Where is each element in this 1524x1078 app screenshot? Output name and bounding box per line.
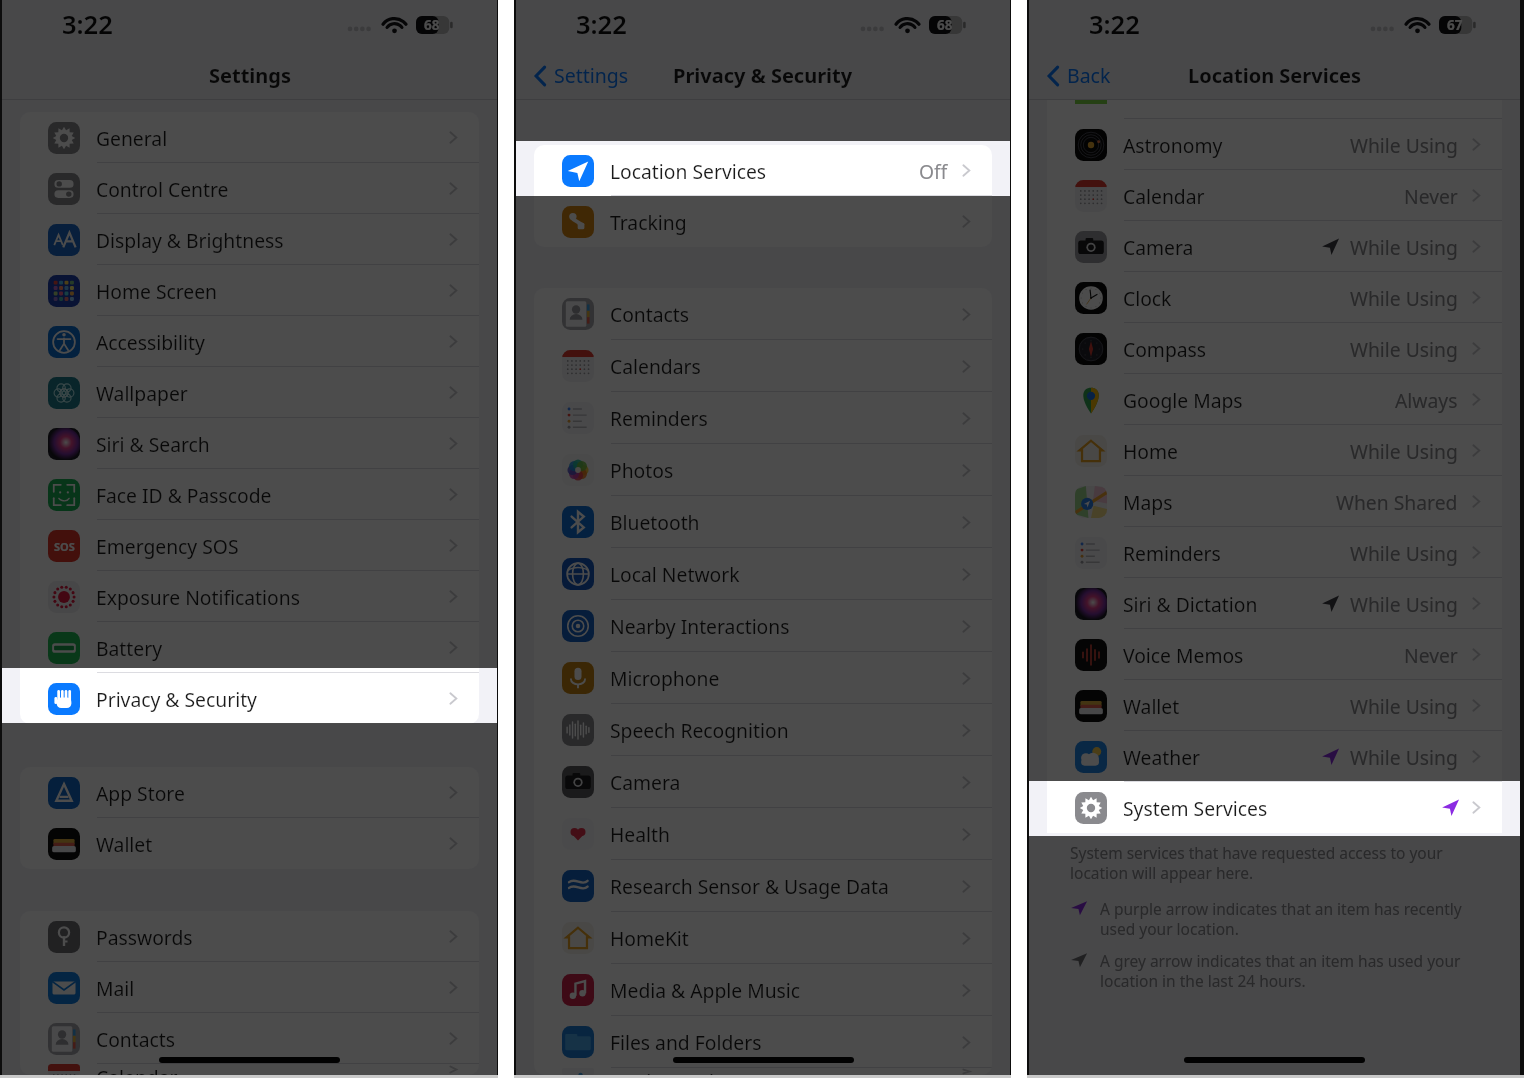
staticText: A purple arrow indicates that an item ha… [1100, 898, 1498, 939]
button[interactable]: Calendars [534, 340, 992, 392]
staticText: Off [919, 158, 948, 184]
staticText: System services that have requested acce… [1070, 842, 1498, 883]
button[interactable]: Siri & Dictation [1047, 578, 1502, 629]
button[interactable]: General [20, 112, 479, 163]
button[interactable]: Camera [1047, 221, 1502, 272]
staticText: Reminders [610, 405, 708, 431]
button[interactable]: Local Network [534, 548, 992, 600]
button[interactable]: Microphone [534, 652, 992, 704]
button[interactable]: Tracking [534, 196, 992, 247]
button[interactable]: Media & Apple Music [534, 964, 992, 1016]
staticText: Passwords [96, 924, 193, 950]
staticText: 3:22 [62, 7, 113, 42]
staticText: Home [1123, 438, 1178, 464]
staticText: Wallpaper [96, 380, 188, 406]
staticText: Google Maps [1123, 387, 1243, 413]
button[interactable]: Photos [534, 444, 992, 496]
button[interactable]: Motion & Fitness [534, 1068, 992, 1075]
button[interactable]: App Store [20, 767, 479, 818]
button[interactable]: Battery [20, 622, 479, 673]
staticText: Location Services [1188, 62, 1361, 89]
button[interactable]: Calendar [20, 1064, 479, 1075]
button[interactable]: Compass [1047, 323, 1502, 374]
button[interactable]: Exposure Notifications [20, 571, 479, 622]
staticText: Reminders [1123, 540, 1221, 566]
staticText: 68 [937, 16, 953, 34]
button[interactable]: Camera [534, 756, 992, 808]
staticText: HomeKit [610, 925, 689, 951]
staticText: Local Network [610, 561, 740, 587]
staticText: General [96, 125, 168, 151]
staticText: Compass [1123, 336, 1207, 362]
staticText: 67 [1447, 16, 1463, 34]
staticText: A grey arrow indicates that an item has … [1100, 950, 1498, 991]
staticText: Display & Brightness [96, 227, 284, 253]
staticText: Contacts [610, 301, 690, 327]
button[interactable]: Control Centre [20, 163, 479, 214]
staticText: Health [610, 821, 670, 847]
staticText: When Shared [1336, 489, 1458, 515]
button[interactable]: Contacts [20, 1013, 479, 1064]
button[interactable]: Voice Memos [1047, 629, 1502, 680]
staticText: Microphone [610, 665, 720, 691]
staticText: Speech Recognition [610, 717, 789, 743]
staticText: App Store [96, 780, 185, 806]
button[interactable]: Back to Settings [516, 56, 639, 95]
button[interactable]: System Services [1047, 782, 1502, 833]
staticText: Astronomy [1123, 132, 1223, 158]
button[interactable]: Accessibility [20, 316, 479, 367]
button[interactable]: Reminders [534, 392, 992, 444]
button[interactable]: Google Maps [1047, 374, 1502, 425]
button[interactable]: Calendar [1047, 170, 1502, 221]
button[interactable]: Home Screen [20, 265, 479, 316]
staticText: Never [1404, 642, 1458, 668]
button[interactable]: Research Sensor & Usage Data [534, 860, 992, 912]
button[interactable]: Wallet [1047, 680, 1502, 731]
button[interactable]: Back [1029, 56, 1121, 95]
button[interactable]: Clock [1047, 272, 1502, 323]
button[interactable]: Speech Recognition [534, 704, 992, 756]
button[interactable]: Display & Brightness [20, 214, 479, 265]
button[interactable]: Passwords [20, 911, 479, 962]
staticText: Privacy & Security [96, 686, 257, 712]
button[interactable]: Location Services [534, 145, 992, 196]
staticText: Nearby Interactions [610, 613, 790, 639]
staticText: Settings [209, 62, 291, 89]
staticText: Files and Folders [610, 1029, 762, 1055]
button[interactable]: Contacts [534, 288, 992, 340]
staticText: Wallet [1123, 693, 1180, 719]
button[interactable]: Reminders [1047, 527, 1502, 578]
staticText: Back [1067, 62, 1111, 89]
staticText: Siri & Dictation [1123, 591, 1258, 617]
button[interactable]: Wallet [20, 818, 479, 869]
button[interactable]: Health [534, 808, 992, 860]
button[interactable]: Privacy & Security [20, 673, 479, 724]
staticText: While Using [1350, 540, 1458, 566]
button[interactable]: Mail [20, 962, 479, 1013]
staticText: Siri & Search [96, 431, 210, 457]
button[interactable]: Nearby Interactions [534, 600, 992, 652]
staticText: While Using [1350, 234, 1458, 260]
staticText: Location Services [610, 158, 767, 184]
button[interactable]: Astronomy [1047, 119, 1502, 170]
button[interactable]: SOS [20, 520, 479, 571]
button[interactable]: Siri & Search [20, 418, 479, 469]
button[interactable]: Face ID & Passcode [20, 469, 479, 520]
staticText: Research Sensor & Usage Data [610, 873, 889, 899]
button[interactable]: Wallpaper [20, 367, 479, 418]
button[interactable]: Weather [1047, 731, 1502, 782]
staticText: 3:22 [1089, 7, 1140, 42]
staticText: Bluetooth [610, 509, 700, 535]
staticText: While Using [1350, 591, 1458, 617]
button[interactable]: HomeKit [534, 912, 992, 964]
staticText: Voice Memos [1123, 642, 1244, 668]
staticText: While Using [1350, 132, 1458, 158]
button[interactable]: Home [1047, 425, 1502, 476]
button[interactable]: Files and Folders [534, 1016, 992, 1068]
staticText: Maps [1123, 489, 1173, 515]
staticText: SOS [54, 539, 75, 554]
staticText: Home Screen [96, 278, 218, 304]
button[interactable]: Bluetooth [534, 496, 992, 548]
staticText: System Services [1123, 795, 1268, 821]
button[interactable]: Maps [1047, 476, 1502, 527]
